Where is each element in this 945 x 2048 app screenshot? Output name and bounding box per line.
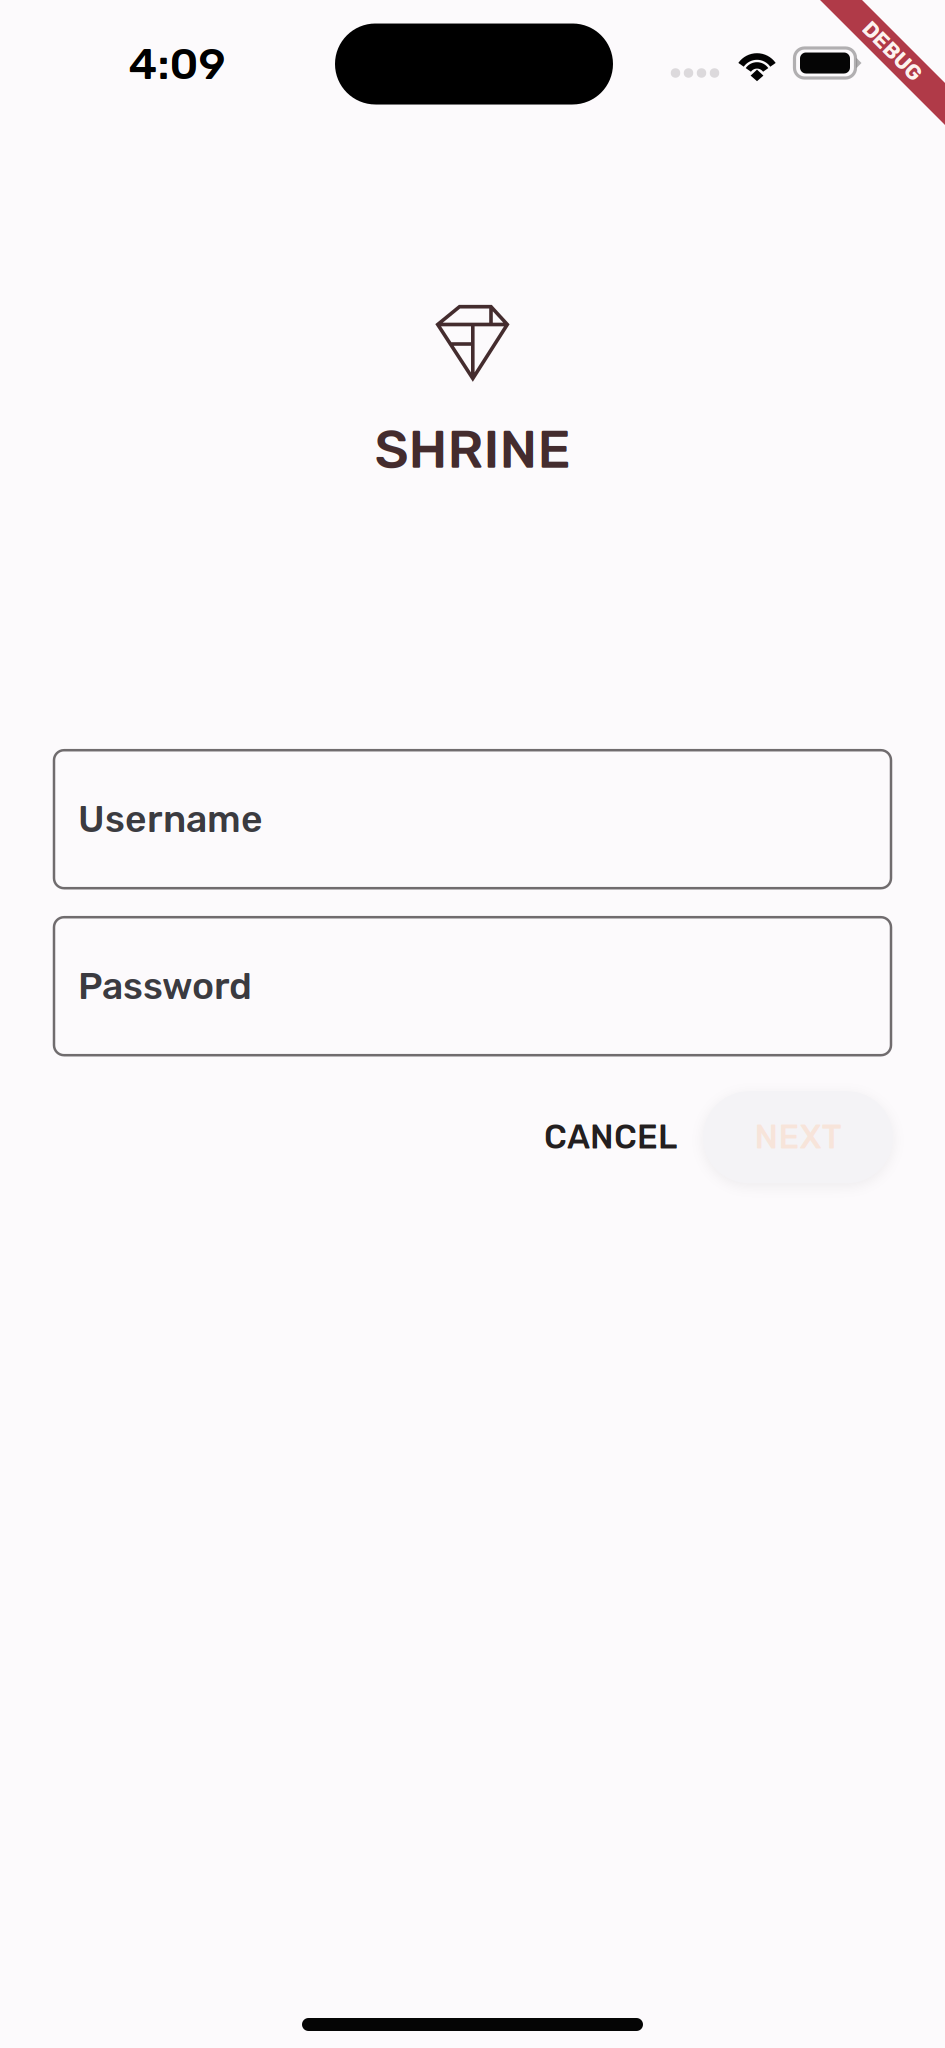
staticText: NEXT <box>754 1117 841 1157</box>
button[interactable]: Password <box>54 917 891 1055</box>
button[interactable]: CANCEL <box>502 1091 703 1183</box>
button[interactable]: NEXT <box>703 1091 893 1183</box>
staticText: Password <box>78 964 252 1008</box>
staticText: CANCEL <box>544 1117 677 1157</box>
staticText: 4:09 <box>128 38 225 90</box>
staticText: SHRINE <box>374 418 570 481</box>
button[interactable]: Username <box>54 750 891 888</box>
staticText: DEBUG <box>855 38 929 64</box>
staticText: Username <box>78 797 263 841</box>
